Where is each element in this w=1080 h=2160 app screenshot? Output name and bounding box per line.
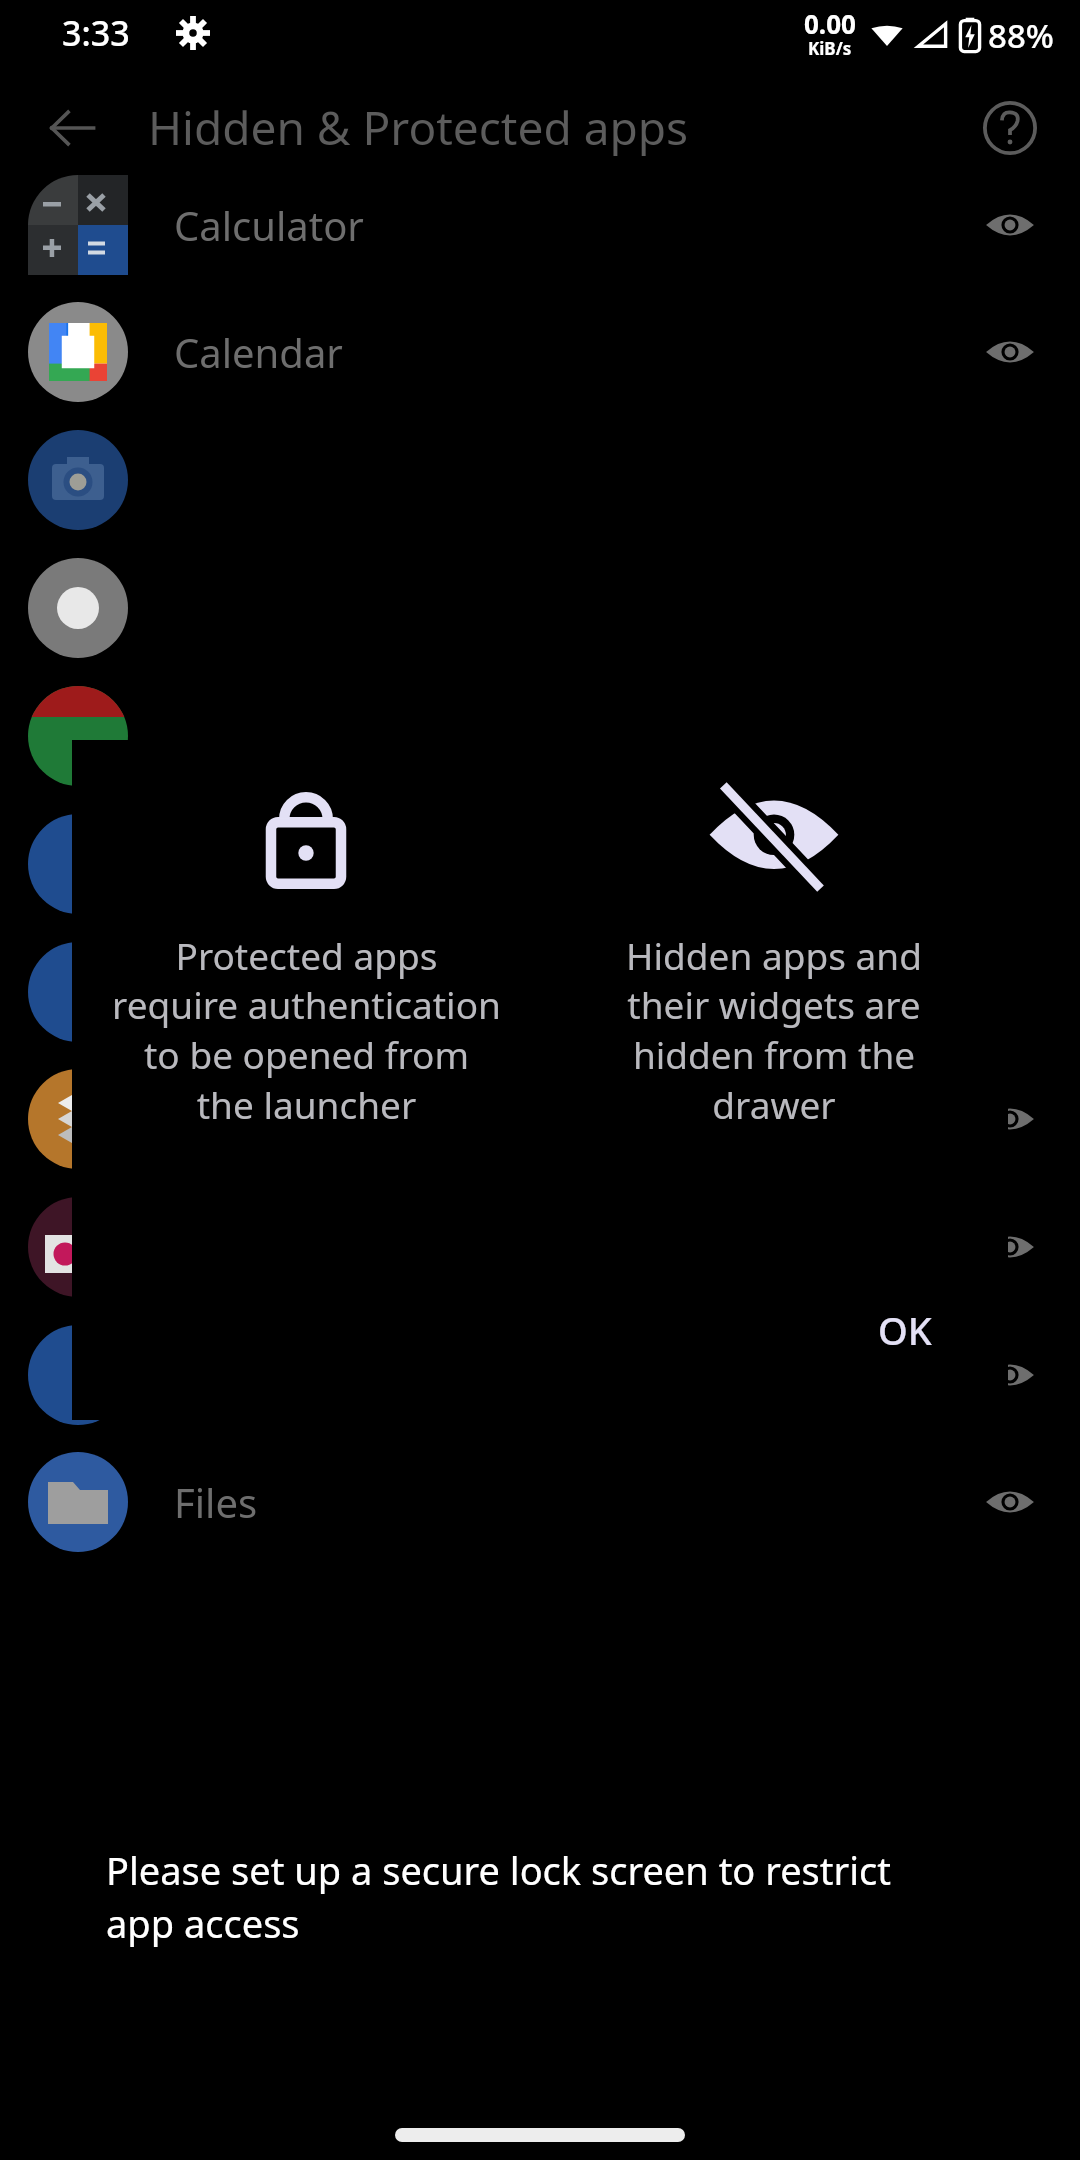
button[interactable] xyxy=(0,686,1080,786)
button[interactable]: OK xyxy=(852,1290,958,1370)
staticText: 3:33 xyxy=(62,10,130,56)
staticText: Please set up a secure lock screen to re… xyxy=(106,1844,891,1950)
staticText: Protected apps require authentication to… xyxy=(112,930,501,1130)
staticText: Hidden apps and their widgets are hidden… xyxy=(626,930,922,1130)
button[interactable]: DataBackup xyxy=(0,1069,1080,1169)
button[interactable]: Back xyxy=(22,78,122,178)
staticText: Calculator xyxy=(174,198,364,252)
button[interactable] xyxy=(0,814,1080,914)
staticText: 88% xyxy=(988,13,1054,58)
button[interactable] xyxy=(0,558,1080,658)
button[interactable]: Help xyxy=(962,80,1058,176)
button[interactable]: Toggle visibility for Files xyxy=(970,1462,1050,1542)
button[interactable]: Files xyxy=(0,1452,1080,1552)
button[interactable]: Toggle visibility for FM Radio xyxy=(970,1207,1050,1287)
button[interactable] xyxy=(0,430,1080,530)
button[interactable] xyxy=(0,942,1080,1042)
staticText: DataBackup xyxy=(174,1092,401,1146)
staticText: Calendar xyxy=(174,325,343,379)
button[interactable]: Toggle visibility for Calendar xyxy=(970,312,1050,392)
button[interactable]: Calendar xyxy=(0,302,1080,402)
staticText: KiB/s xyxy=(808,37,852,60)
button[interactable]: Toggle visibility for DataBackup xyxy=(970,1079,1050,1159)
button[interactable]: Toggle visibility for Gallery xyxy=(970,1335,1050,1415)
button[interactable]: Toggle visibility for Calculator xyxy=(970,185,1050,265)
staticText: OK xyxy=(878,1304,932,1356)
staticText: 0.00 xyxy=(804,6,856,41)
button[interactable]: FM Radio xyxy=(0,1197,1080,1297)
button[interactable]: Gallery xyxy=(0,1325,1080,1425)
button[interactable]: Please set up a secure lock screen to re… xyxy=(84,1822,996,1972)
button[interactable]: Calculator xyxy=(0,175,1080,275)
staticText: Files xyxy=(174,1475,258,1529)
staticText: Hidden & Protected apps xyxy=(148,96,689,159)
